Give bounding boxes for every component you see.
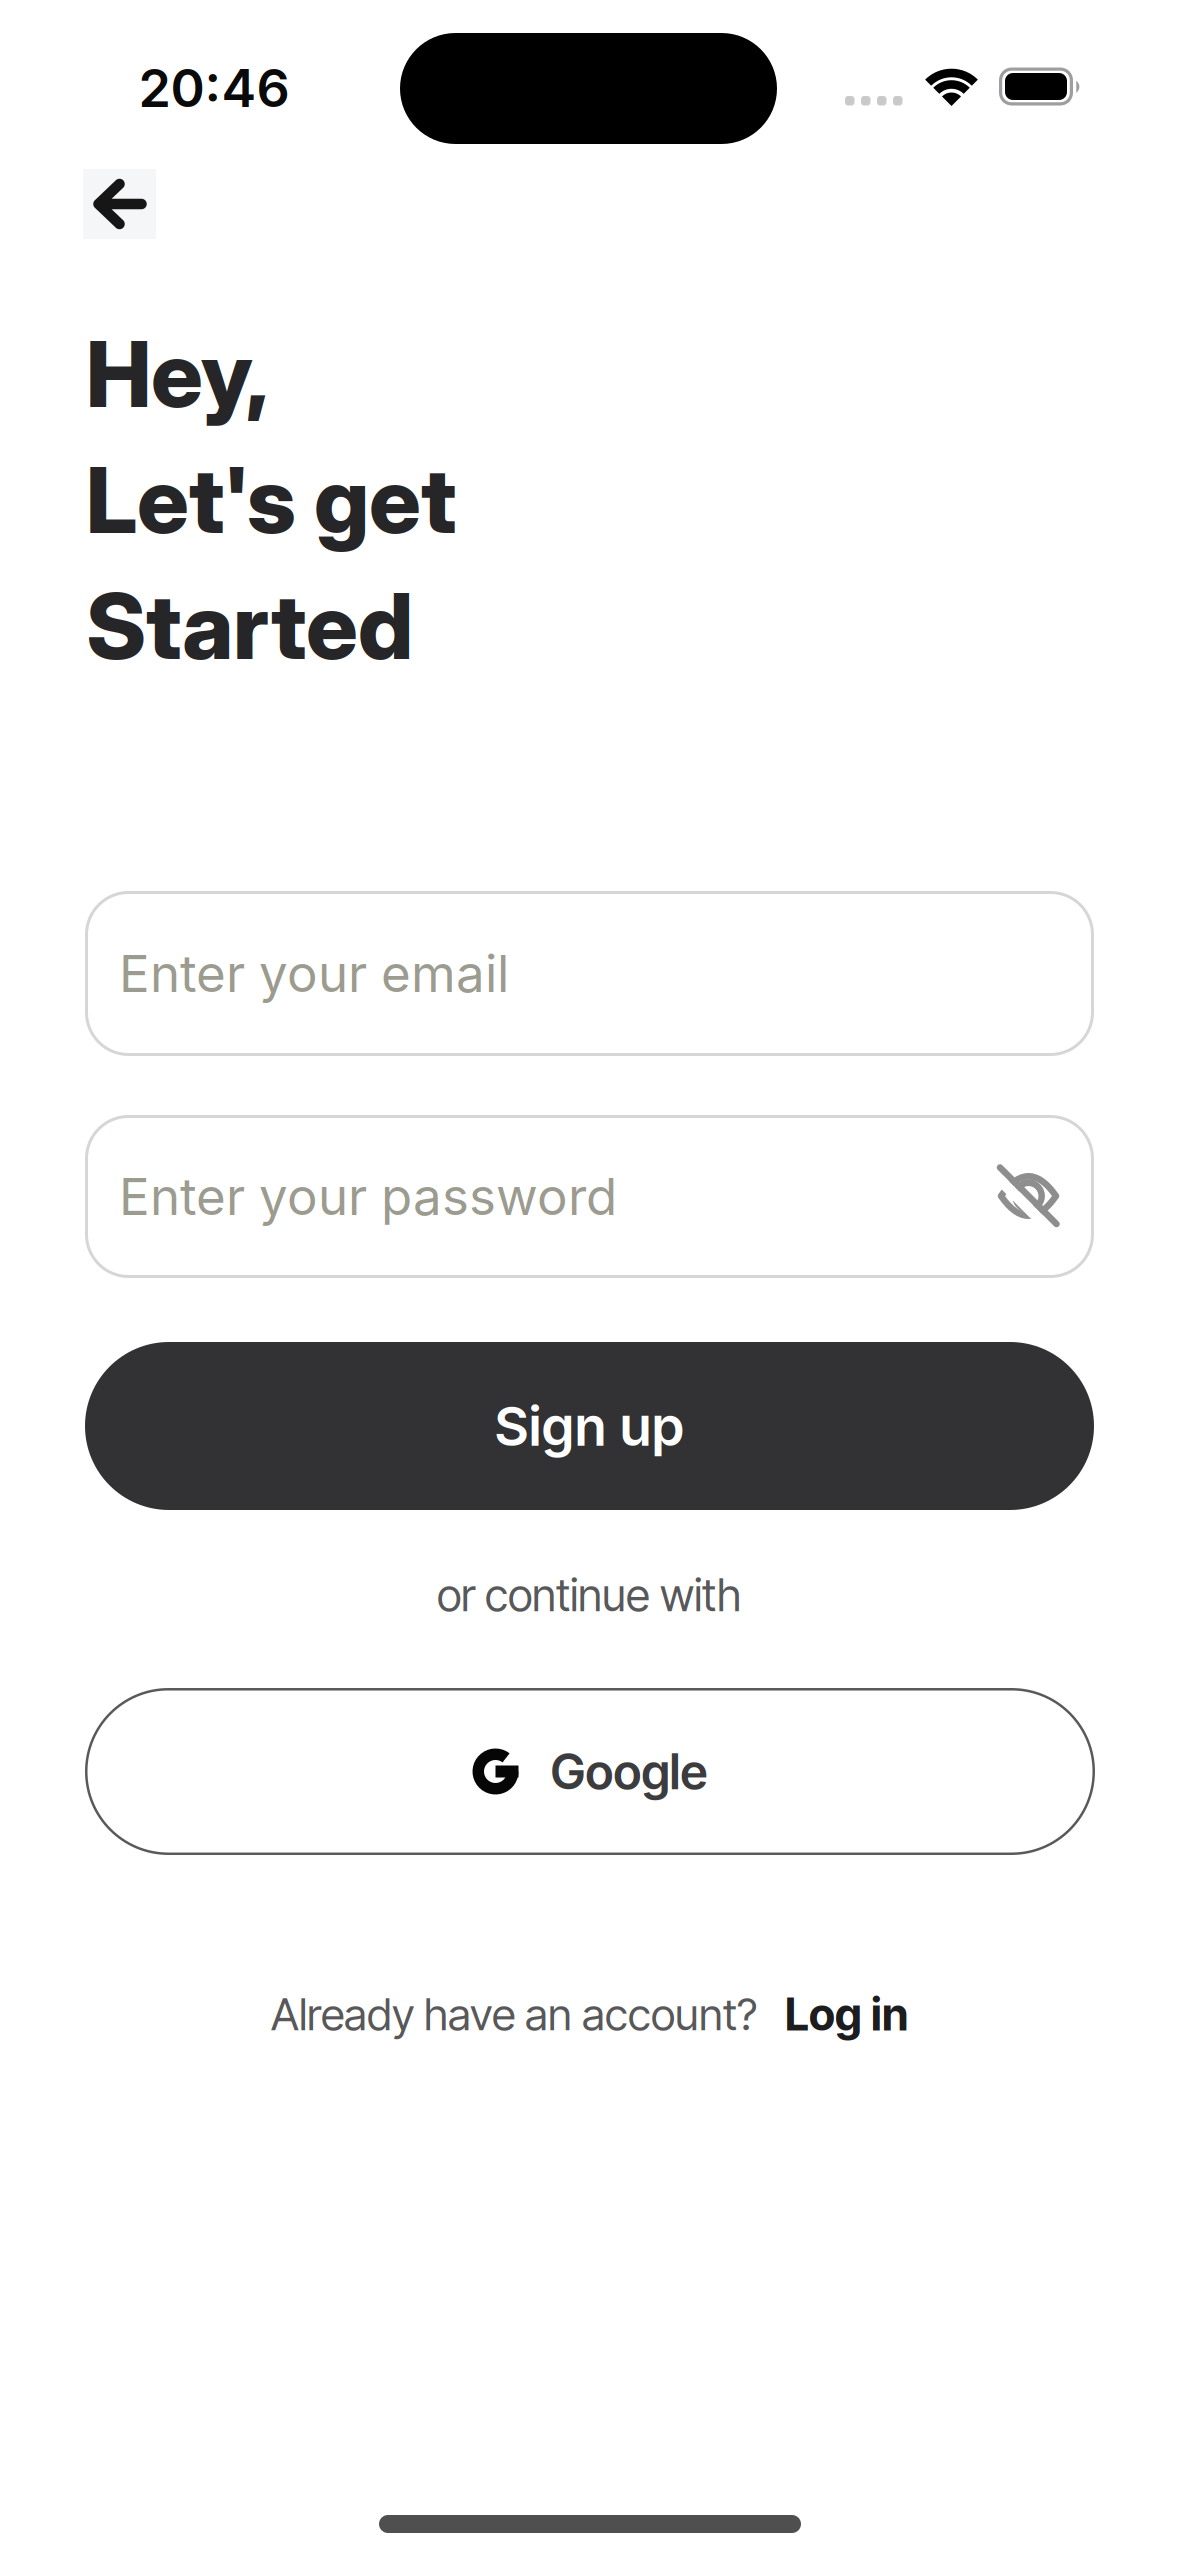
staticText: or continue with — [437, 1569, 741, 1621]
button[interactable]: Google — [85, 1688, 1095, 1855]
button[interactable]: Log in — [785, 1988, 908, 2040]
staticText: Started — [86, 573, 413, 679]
staticText: Sign up — [494, 1394, 685, 1458]
staticText: Hey, — [86, 321, 269, 427]
staticText: Log in — [785, 1988, 908, 2040]
staticText: Enter your password — [119, 1166, 617, 1227]
button[interactable]: Back — [83, 169, 156, 239]
staticText: Already have an account? — [271, 1988, 757, 2040]
textField[interactable]: Enter your password — [119, 1166, 1094, 1227]
staticText: Let's get — [86, 447, 456, 553]
staticText: Enter your email — [119, 943, 509, 1004]
textField[interactable]: Enter your email — [119, 943, 1094, 1004]
button[interactable]: Sign up — [85, 1342, 1094, 1510]
button[interactable]: Show password — [999, 1167, 1058, 1226]
staticText: 20:46 — [138, 57, 289, 119]
staticText: Google — [550, 1743, 707, 1800]
